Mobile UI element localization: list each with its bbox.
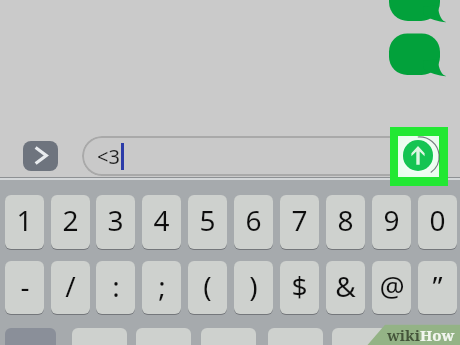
- staticText: 5: [199, 201, 216, 239]
- button[interactable]: (: [188, 261, 227, 314]
- staticText: How: [420, 325, 455, 345]
- staticText: ;: [158, 267, 166, 305]
- button[interactable]: 0: [418, 195, 457, 249]
- button[interactable]: $: [280, 261, 319, 314]
- staticText: <3: [97, 143, 120, 170]
- staticText: 3: [107, 201, 124, 239]
- staticText: 9: [383, 201, 400, 239]
- button[interactable]: 2: [51, 195, 90, 249]
- button[interactable]: ”: [418, 261, 457, 314]
- button[interactable]: Send: [403, 140, 433, 171]
- staticText: ): [249, 267, 258, 305]
- button[interactable]: 8: [326, 195, 365, 249]
- staticText: /: [65, 267, 76, 305]
- button[interactable]: [136, 328, 191, 345]
- button[interactable]: 6: [234, 195, 273, 249]
- staticText: 7: [291, 201, 308, 239]
- button[interactable]: 7: [280, 195, 319, 249]
- staticText: $: [291, 267, 308, 305]
- staticText: ”: [432, 267, 443, 305]
- button[interactable]: [268, 328, 323, 345]
- staticText: :: [112, 267, 120, 305]
- button[interactable]: -: [5, 261, 44, 314]
- staticText: @: [379, 267, 405, 305]
- button[interactable]: [72, 328, 127, 345]
- button[interactable]: @: [372, 261, 411, 314]
- staticText: wiki: [387, 325, 420, 345]
- button[interactable]: :: [96, 261, 135, 314]
- button[interactable]: 4: [142, 195, 181, 249]
- staticText: 6: [245, 201, 262, 239]
- button[interactable]: [201, 328, 256, 345]
- button[interactable]: 1: [5, 195, 44, 249]
- staticText: 0: [429, 201, 446, 239]
- button[interactable]: &: [326, 261, 365, 314]
- button[interactable]: 5: [188, 195, 227, 249]
- button[interactable]: ): [234, 261, 273, 314]
- staticText: (: [203, 267, 212, 305]
- staticText: 2: [62, 201, 79, 239]
- button[interactable]: Show app drawer: [23, 141, 58, 171]
- button[interactable]: /: [51, 261, 90, 314]
- button[interactable]: 3: [96, 195, 135, 249]
- staticText: &: [335, 267, 356, 305]
- staticText: -: [20, 267, 30, 305]
- button[interactable]: <3: [82, 136, 417, 176]
- staticText: 8: [337, 201, 354, 239]
- button[interactable]: 9: [372, 195, 411, 249]
- staticText: 1: [16, 201, 33, 239]
- button[interactable]: Symbols: [5, 328, 56, 345]
- button[interactable]: [396, 328, 451, 345]
- button[interactable]: ;: [142, 261, 181, 314]
- button[interactable]: [332, 328, 387, 345]
- staticText: 4: [153, 201, 170, 239]
